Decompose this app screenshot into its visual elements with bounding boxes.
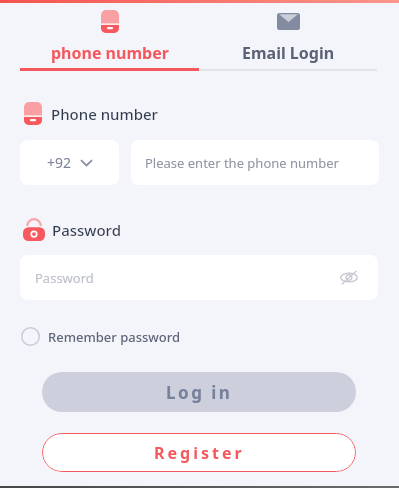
button[interactable]: Please enter the phone number <box>131 140 379 185</box>
button[interactable]: Register <box>42 433 356 472</box>
staticText: Email Login <box>242 42 335 64</box>
staticText: Password <box>52 220 121 240</box>
staticText: Phone number <box>51 104 158 124</box>
button[interactable]: phone number <box>20 4 199 68</box>
staticText: phone number <box>51 42 169 64</box>
button[interactable]: Remember password <box>21 327 181 346</box>
button[interactable]: +92 <box>20 140 119 185</box>
staticText: +92 <box>47 153 72 172</box>
button[interactable]: Password <box>20 255 378 300</box>
staticText: Remember password <box>48 328 181 346</box>
button[interactable]: Log in <box>42 372 356 412</box>
staticText: Please enter the phone number <box>145 154 339 172</box>
staticText: Log in <box>166 381 233 404</box>
staticText: Password <box>35 269 94 287</box>
staticText: Register <box>154 442 245 464</box>
button[interactable]: Email Login <box>199 4 377 68</box>
